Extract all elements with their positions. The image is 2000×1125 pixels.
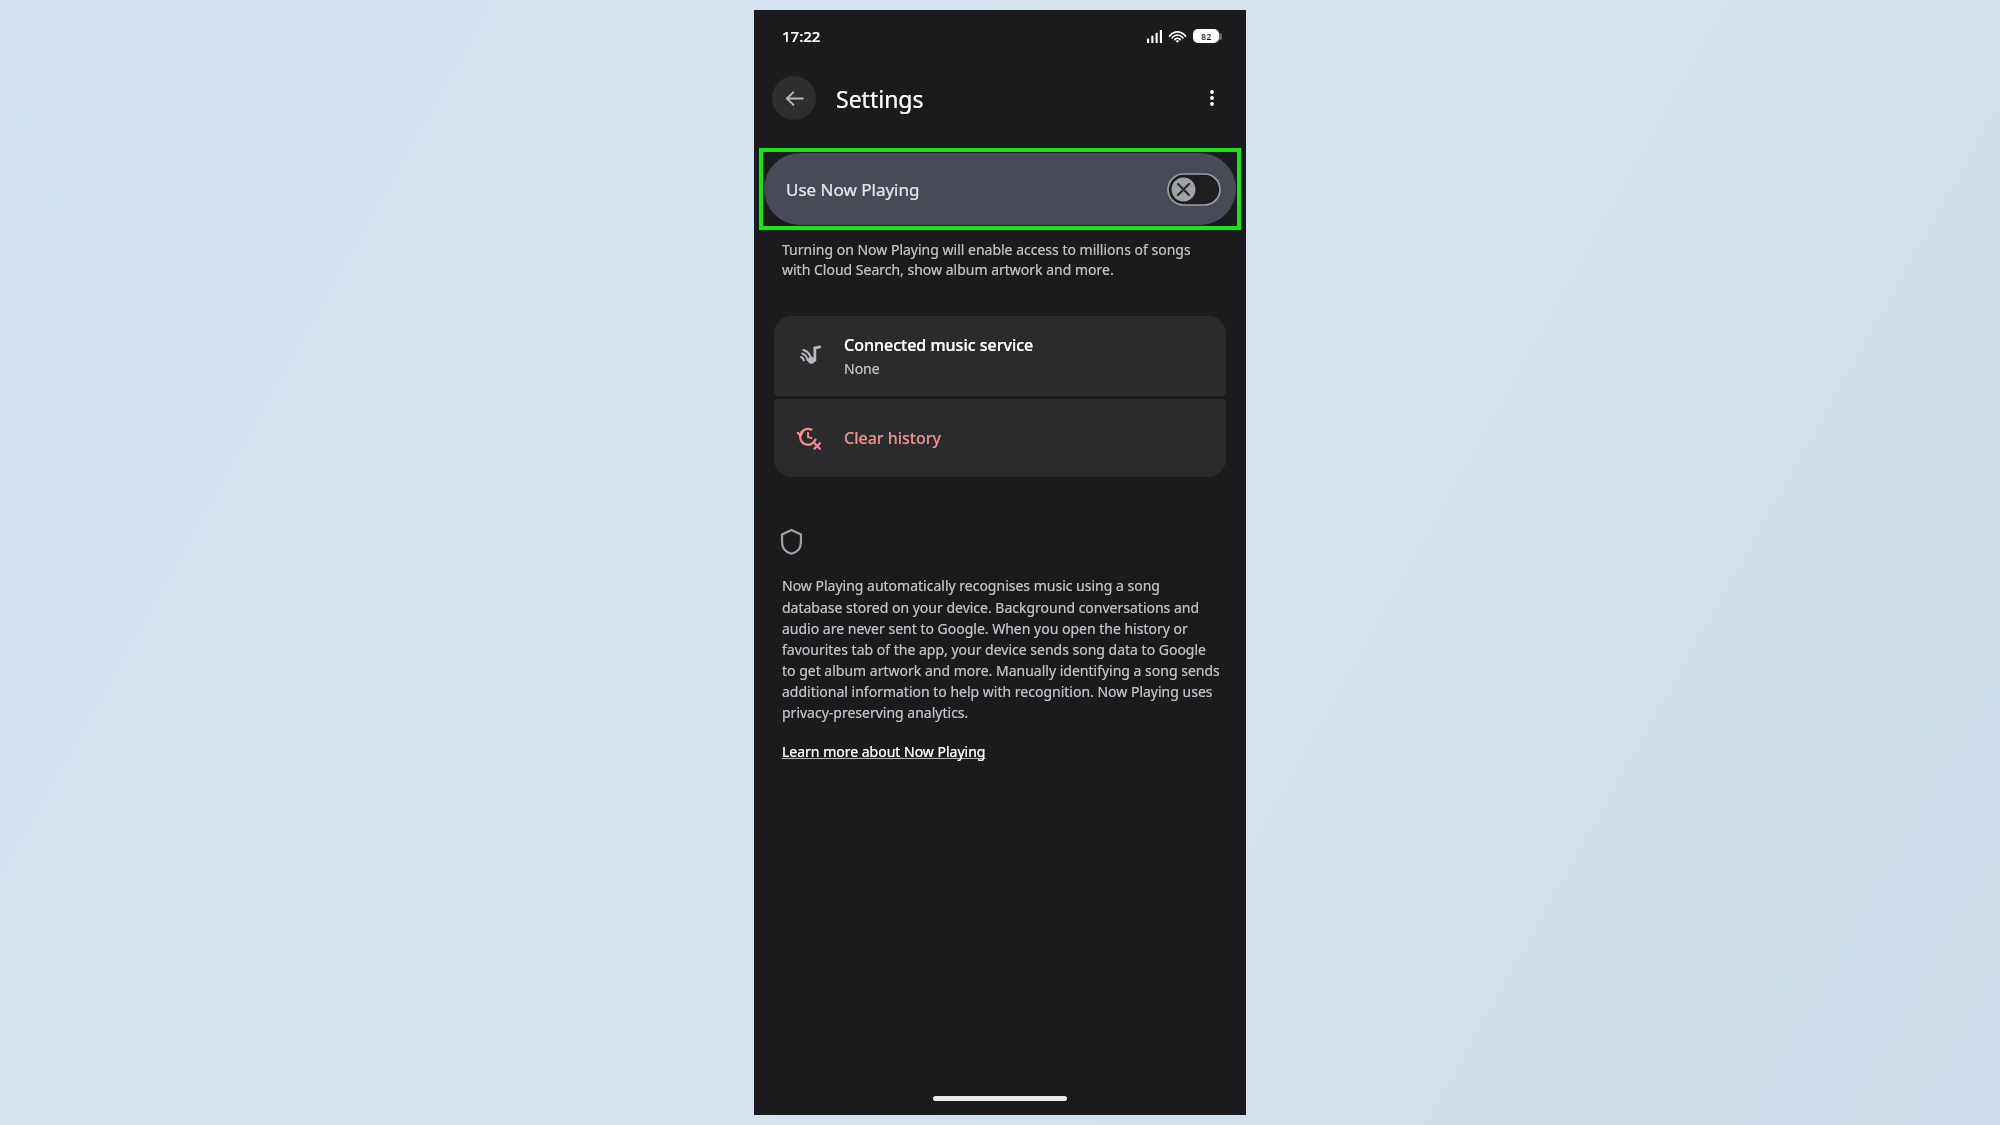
staticText: Settings (836, 83, 924, 114)
staticText: Turning on Now Playing will enable acces… (782, 240, 1218, 280)
button[interactable]: More options (1192, 78, 1232, 118)
button[interactable]: Use Now Playing (764, 153, 1236, 225)
staticText: Now Playing automatically recognises mus… (782, 576, 1222, 722)
staticText: None (844, 359, 880, 378)
button[interactable]: Back (772, 76, 816, 120)
button[interactable]: Connected music service (774, 316, 1226, 396)
button[interactable]: Clear history (774, 399, 1226, 477)
staticText: Use Now Playing (786, 178, 920, 201)
staticText: Clear history (844, 427, 941, 449)
button[interactable]: Learn more about Now Playing (782, 742, 986, 761)
staticText: Connected music service (844, 334, 1034, 356)
staticText: Learn more about Now Playing (782, 742, 986, 761)
staticText: 82 (1201, 30, 1212, 42)
staticText: 17:22 (782, 26, 821, 46)
